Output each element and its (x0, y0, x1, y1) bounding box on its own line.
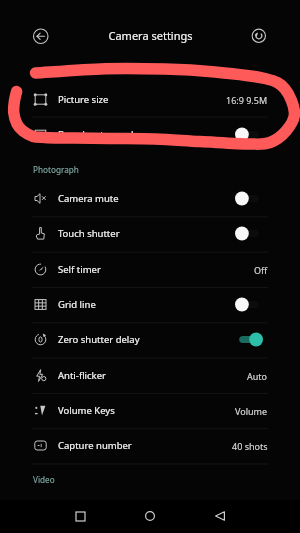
staticText: Off (254, 264, 268, 276)
button[interactable]: Home (137, 503, 163, 529)
staticText: Touch shutter (58, 227, 120, 240)
button[interactable]: Capture number (0, 428, 300, 463)
button[interactable]: Self timer (0, 252, 300, 287)
button[interactable]: Back (207, 503, 233, 529)
staticText: Photograph (33, 164, 79, 175)
staticText: 16:9 9.5M (226, 94, 268, 106)
staticText: Volume (235, 405, 268, 417)
button[interactable]: Back (26, 22, 55, 51)
button[interactable]: Restore defaults (244, 21, 273, 50)
staticText: Brand watermark (58, 128, 137, 141)
staticText: 40 shots (232, 440, 268, 452)
button[interactable]: Zero shutter delay (0, 322, 300, 357)
staticText: Self timer (58, 263, 101, 276)
button[interactable]: Anti-flicker (0, 358, 300, 393)
button[interactable]: Camera mute (0, 181, 300, 216)
button[interactable]: Brand watermark (0, 117, 300, 152)
button[interactable]: Picture size (0, 82, 300, 117)
staticText: Video (33, 474, 55, 485)
staticText: Camera settings (108, 28, 193, 43)
staticText: Camera mute (58, 192, 119, 205)
staticText: Zero shutter delay (58, 333, 140, 346)
button[interactable]: Recents (67, 503, 93, 529)
button[interactable]: Touch shutter (0, 216, 300, 251)
staticText: Picture size (58, 93, 109, 106)
button[interactable]: Grid line (0, 287, 300, 322)
button[interactable]: Volume Keys (0, 393, 300, 428)
staticText: Volume Keys (58, 404, 115, 417)
staticText: Auto (247, 370, 268, 382)
staticText: Anti-flicker (58, 369, 106, 382)
staticText: Grid line (58, 298, 96, 311)
staticText: Capture number (58, 439, 132, 452)
